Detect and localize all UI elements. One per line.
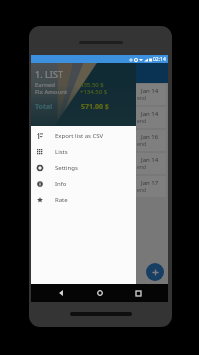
staticText: 08:00 - 16:00 (38, 95, 68, 102)
staticText: Work day (38, 87, 65, 95)
staticText: +134.50 $ (80, 88, 108, 96)
staticText: end (137, 164, 146, 171)
staticText: end (137, 118, 146, 125)
staticText: 571.00 $ (81, 102, 109, 112)
staticText: Lists (55, 148, 68, 156)
staticText: Export list as CSV (55, 132, 104, 140)
button[interactable]: Jan 16 (33, 130, 166, 151)
staticText: Jan 14 (141, 110, 159, 118)
staticText: end (137, 187, 146, 194)
button[interactable]: Back (53, 285, 69, 301)
button[interactable]: Recent apps (130, 285, 146, 301)
button[interactable]: Jan 14 (33, 84, 166, 105)
button[interactable]: Jan 17 (33, 176, 166, 197)
staticText: Settings (55, 164, 78, 172)
button[interactable]: Settings (31, 160, 136, 176)
staticText: Work day (38, 110, 65, 118)
staticText: 435.50 $ (80, 81, 104, 89)
button[interactable]: Jan 14 (33, 107, 166, 128)
staticText: Jan 16 (141, 133, 159, 141)
staticText: Rate (55, 196, 68, 204)
staticText: Earned (35, 81, 55, 89)
staticText: end (137, 141, 146, 148)
staticText: 02:14 (153, 56, 166, 63)
button[interactable]: Add entry (146, 263, 164, 281)
staticText: Work day (38, 133, 65, 141)
button[interactable]: Rate (31, 192, 136, 208)
staticText: Info (55, 180, 67, 188)
staticText: Total (35, 102, 53, 112)
staticText: end (137, 95, 146, 102)
staticText: 1. LIST (35, 68, 63, 80)
button[interactable]: Jan 14 (33, 153, 166, 174)
staticText: Jan 17 (141, 179, 159, 187)
button[interactable]: Info (31, 176, 136, 192)
button[interactable]: Home (92, 285, 108, 301)
button[interactable]: Lists (31, 144, 136, 160)
button[interactable]: Export list as CSV (31, 128, 136, 144)
staticText: 08:00 - 16:00 (38, 118, 68, 125)
staticText: Jan 14 (141, 87, 159, 95)
staticText: Work day (38, 179, 65, 187)
staticText: Jan 14 (141, 156, 159, 164)
staticText: Fix Amount (35, 88, 68, 96)
staticText: 08:00 - 16:00 (38, 164, 68, 171)
